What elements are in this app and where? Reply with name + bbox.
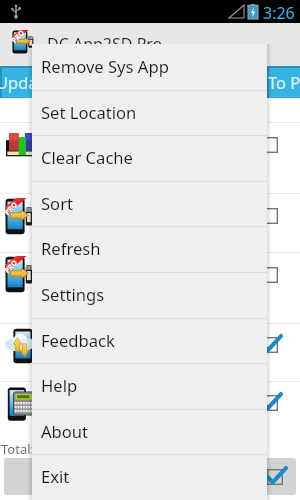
button[interactable] — [4, 458, 296, 495]
staticText: PRO — [2, 200, 20, 218]
button[interactable]: Remove Sys App — [32, 44, 267, 90]
button[interactable]: Selected — [262, 337, 278, 353]
staticText: Refresh — [41, 237, 101, 260]
staticText: Clear Cache — [41, 146, 133, 169]
button[interactable]: Not selected — [262, 137, 278, 153]
button[interactable] — [0, 253, 300, 323]
button[interactable] — [0, 123, 300, 193]
button[interactable]: Not selected — [262, 208, 278, 224]
staticText: Help — [41, 374, 78, 397]
staticText: Settings — [41, 283, 105, 306]
button[interactable] — [0, 324, 300, 381]
staticText: Sort — [41, 192, 73, 215]
staticText: Total: — [1, 440, 35, 458]
button[interactable]: Set Location — [32, 90, 267, 136]
staticText: Update To SD Card — [0, 71, 142, 93]
button[interactable]: Feedback — [32, 318, 267, 364]
button[interactable] — [0, 194, 300, 252]
button[interactable]: Refresh — [32, 226, 267, 272]
staticText: DC App2SD Pro — [47, 33, 163, 55]
button[interactable]: Clear Cache — [32, 135, 267, 181]
button[interactable]: Update To SD Card — [0, 66, 265, 98]
staticText: Set Location — [41, 101, 137, 124]
button[interactable]: Exit — [32, 454, 267, 500]
button[interactable]: Select all — [267, 469, 283, 485]
staticText: Remove Sys App — [41, 55, 169, 78]
button[interactable]: Not selected — [262, 267, 278, 283]
button[interactable] — [0, 382, 300, 452]
staticText: About — [41, 420, 89, 443]
button[interactable]: Sort — [32, 181, 267, 227]
button[interactable]: Help — [32, 363, 267, 409]
staticText: To Phone Memory — [268, 71, 300, 93]
staticText: Exit — [41, 465, 70, 488]
staticText: PRO — [2, 258, 20, 276]
button[interactable]: About — [32, 409, 267, 455]
button[interactable]: Settings — [32, 272, 267, 318]
button[interactable]: Selected — [262, 395, 278, 411]
button[interactable]: To Phone Memory — [267, 66, 300, 98]
staticText: PRO — [9, 28, 27, 46]
staticText: 3:26 — [263, 2, 295, 24]
staticText: Feedback — [41, 329, 115, 352]
